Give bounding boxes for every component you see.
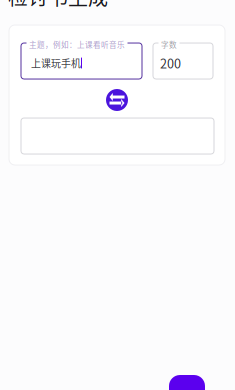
staticText: 字数	[161, 39, 177, 50]
staticText: 200	[160, 54, 181, 72]
button[interactable]: 交换	[106, 89, 128, 111]
button[interactable]: 生成	[169, 375, 205, 390]
staticText: 上课玩手机	[31, 56, 81, 70]
staticText: 检讨书生成	[8, 0, 108, 11]
staticText: 主题，例如：上课看听音乐	[29, 39, 125, 50]
